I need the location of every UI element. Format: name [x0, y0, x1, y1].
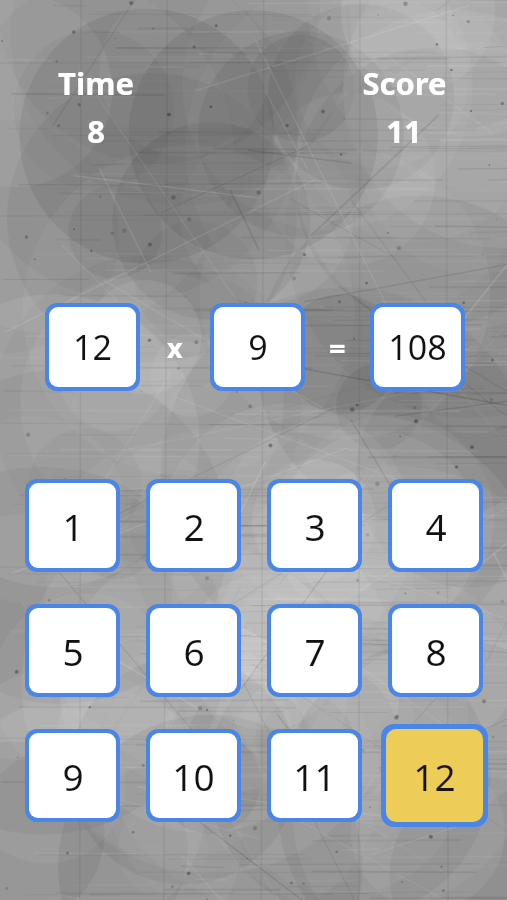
staticText: 11 [293, 751, 336, 801]
button[interactable]: 8 [392, 608, 479, 693]
button[interactable]: 12 [49, 307, 136, 387]
staticText: Score [362, 62, 447, 104]
staticText: 1 [62, 501, 84, 551]
staticText: 10 [172, 751, 215, 801]
button[interactable]: 1 [29, 483, 116, 568]
button[interactable]: 108 [374, 307, 461, 387]
staticText: 6 [183, 626, 205, 676]
button[interactable]: 4 [392, 483, 479, 568]
button[interactable]: 2 [150, 483, 237, 568]
staticText: 3 [304, 501, 326, 551]
staticText: 108 [388, 324, 447, 370]
staticText: x [167, 329, 183, 366]
staticText: 11 [386, 110, 422, 152]
staticText: 8 [425, 626, 447, 676]
button[interactable]: 3 [271, 483, 358, 568]
button[interactable]: 12 [386, 729, 483, 822]
button[interactable]: 6 [150, 608, 237, 693]
staticText: 5 [62, 626, 84, 676]
staticText: 8 [87, 110, 105, 152]
button[interactable]: 7 [271, 608, 358, 693]
staticText: 4 [425, 501, 447, 551]
button[interactable]: 9 [214, 307, 301, 387]
staticText: 12 [413, 751, 456, 801]
staticText: 7 [304, 626, 326, 676]
button[interactable]: 9 [29, 733, 116, 818]
staticText: 9 [62, 751, 84, 801]
staticText: 12 [73, 324, 112, 370]
staticText: 9 [248, 324, 268, 370]
staticText: = [329, 328, 346, 367]
staticText: 2 [183, 501, 205, 551]
button[interactable]: 5 [29, 608, 116, 693]
button[interactable]: 10 [150, 733, 237, 818]
staticText: Time [58, 62, 134, 104]
button[interactable]: 11 [271, 733, 358, 818]
